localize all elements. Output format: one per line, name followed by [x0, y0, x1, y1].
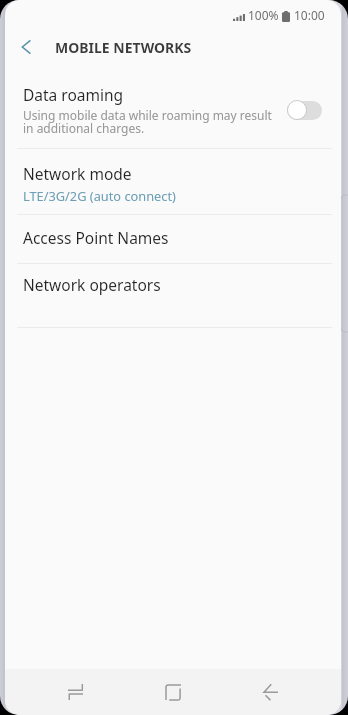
button[interactable]: Recent apps [49, 669, 101, 715]
staticText: Network mode [23, 163, 132, 184]
button[interactable]: Navigate up [5, 28, 47, 66]
staticText: MOBILE NETWORKS [55, 38, 192, 57]
staticText: Data roaming [23, 84, 124, 105]
staticText: Access Point Names [23, 227, 169, 248]
button[interactable]: Home [147, 669, 199, 715]
button[interactable]: Data roaming [5, 66, 341, 148]
staticText: Using mobile data while roaming may resu… [23, 107, 272, 136]
button[interactable]: Data roaming [287, 100, 322, 120]
button[interactable]: Network operators [5, 264, 341, 313]
staticText: 10:00 [294, 7, 325, 23]
button[interactable]: Access Point Names [5, 215, 341, 263]
staticText: LTE/3G/2G (auto connect) [23, 187, 176, 204]
staticText: 100% [248, 7, 279, 23]
button[interactable]: Network mode [5, 149, 341, 214]
staticText: Network operators [23, 274, 161, 295]
button[interactable]: Back [245, 669, 297, 715]
